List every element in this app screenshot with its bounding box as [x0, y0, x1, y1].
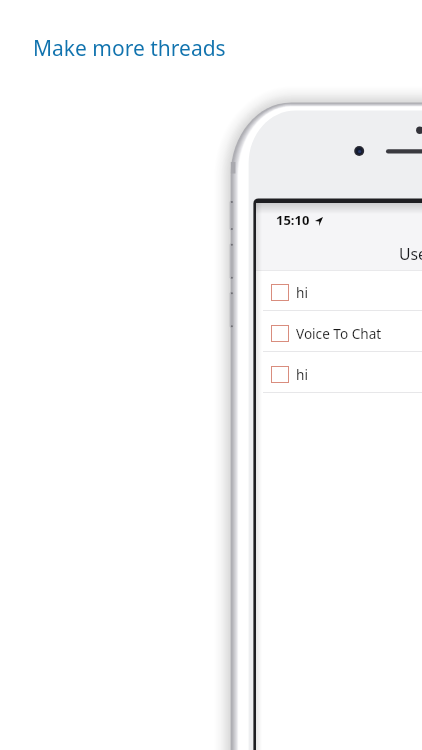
staticText: 15:10: [276, 211, 310, 229]
staticText: Make more threads: [33, 34, 226, 63]
button[interactable]: hi: [256, 352, 422, 393]
staticText: User: [399, 243, 422, 265]
staticText: hi: [296, 365, 308, 384]
staticText: Voice To Chat: [296, 324, 382, 343]
button[interactable]: hi: [256, 271, 422, 311]
staticText: hi: [296, 283, 308, 302]
other: Location services active: [315, 217, 323, 226]
button[interactable]: Voice To Chat: [256, 311, 422, 352]
